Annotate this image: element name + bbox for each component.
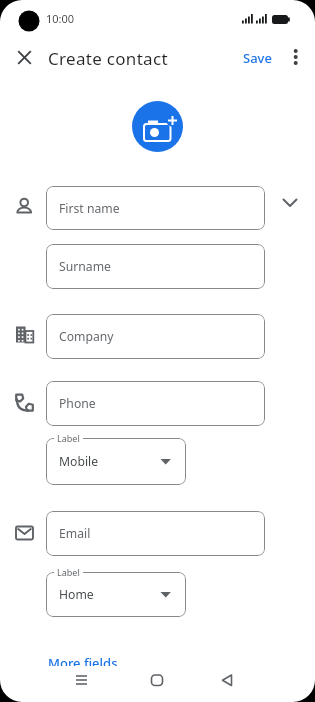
staticText: Company <box>59 328 114 345</box>
button[interactable]: Home <box>46 572 186 617</box>
staticText: Save <box>243 49 272 67</box>
staticText: Label <box>57 432 80 444</box>
staticText: First name <box>59 200 120 217</box>
staticText: Mobile <box>59 453 99 470</box>
button[interactable]: Company <box>46 314 265 359</box>
staticText: Home <box>59 586 94 603</box>
button[interactable] <box>211 666 243 702</box>
button[interactable] <box>141 666 173 702</box>
button[interactable]: Email <box>46 511 265 556</box>
button[interactable]: Surname <box>46 244 265 289</box>
button[interactable]: First name <box>46 186 265 230</box>
button[interactable] <box>13 46 36 69</box>
button[interactable]: Phone <box>46 381 265 426</box>
button[interactable] <box>66 666 98 702</box>
button[interactable]: Save <box>236 46 278 70</box>
staticText: Phone <box>59 395 96 412</box>
button[interactable] <box>278 191 302 215</box>
staticText: 10:00 <box>46 11 75 26</box>
staticText: Surname <box>59 258 111 275</box>
staticText: Label <box>57 566 80 578</box>
button[interactable] <box>132 101 183 152</box>
button[interactable] <box>284 45 308 69</box>
button[interactable]: Mobile <box>46 438 186 485</box>
staticText: Create contact <box>48 47 168 70</box>
staticText: Email <box>59 525 91 542</box>
button[interactable]: More fields <box>48 654 118 672</box>
